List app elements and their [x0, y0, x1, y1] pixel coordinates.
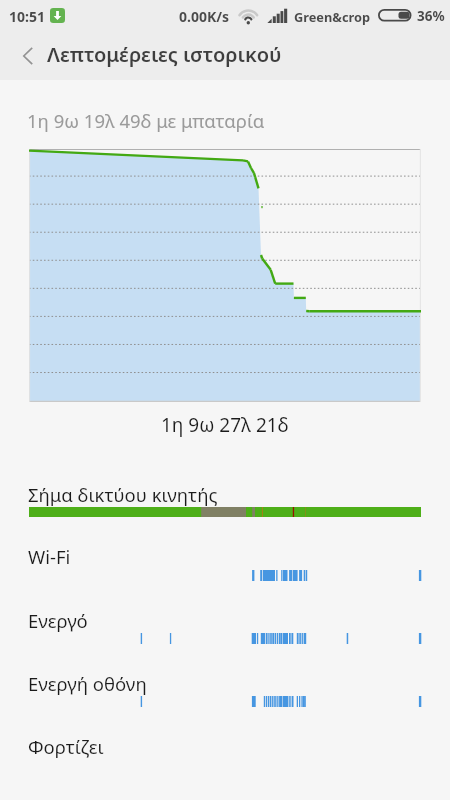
- staticText: Green&crop: [294, 8, 371, 25]
- staticText: Σήμα δικτύου κινητής: [28, 482, 218, 507]
- staticText: 36%: [417, 7, 445, 25]
- staticText: 1η 9ω 19λ 49δ με μπαταρία: [27, 108, 265, 133]
- button[interactable]: Back: [0, 30, 47, 79]
- staticText: Ενεργό: [28, 608, 88, 633]
- staticText: Λεπτομέρειες ιστορικού: [47, 41, 282, 68]
- staticText: Ενεργή οθόνη: [28, 671, 147, 696]
- staticText: 10:51: [9, 7, 45, 26]
- staticText: 1η 9ω 27λ 21δ: [161, 412, 289, 438]
- staticText: Φορτίζει: [28, 734, 104, 759]
- staticText: 0.00K/s: [179, 7, 230, 26]
- staticText: Wi-Fi: [28, 544, 71, 569]
